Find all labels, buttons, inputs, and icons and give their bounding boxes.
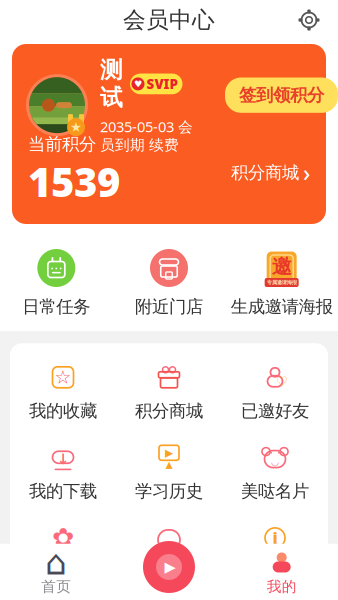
staticText: 测试 xyxy=(100,56,123,112)
button[interactable]: 附近门店 xyxy=(113,248,225,317)
button[interactable]: 日常任务 xyxy=(0,248,113,317)
button[interactable]: ▶ xyxy=(116,444,222,502)
staticText: › xyxy=(303,158,310,188)
button[interactable]: 积分商城 xyxy=(231,152,310,194)
staticText: 邀 xyxy=(272,254,292,279)
staticText: 美哒名片 xyxy=(241,481,309,502)
staticText: ♡ xyxy=(276,374,288,389)
staticText: ⌂ xyxy=(45,543,67,582)
button[interactable]: ⌂ xyxy=(0,544,113,600)
staticText: 积分商城 xyxy=(231,162,299,183)
button[interactable]: ↓ xyxy=(10,444,116,502)
staticText: ◡ xyxy=(271,457,278,467)
button[interactable]: Play xyxy=(113,544,225,600)
staticText: 首页 xyxy=(41,577,71,595)
staticText: 学习历史 xyxy=(135,481,203,502)
staticText: 签到领积分 xyxy=(239,84,324,106)
staticText: ▶ xyxy=(165,447,173,459)
staticText: 已邀好友 xyxy=(241,400,309,422)
staticText: ★ xyxy=(70,120,82,135)
button[interactable]: i xyxy=(222,524,328,584)
staticText: 会员中心 xyxy=(123,6,215,34)
button[interactable]: Settings xyxy=(292,3,326,37)
staticText: ♥ xyxy=(134,79,142,89)
staticText: ☆ xyxy=(54,367,71,388)
staticText: 我的下载 xyxy=(29,481,97,502)
staticText: 我的 xyxy=(267,577,297,595)
button[interactable]: Play xyxy=(141,539,197,595)
staticText: ✿ xyxy=(52,523,74,553)
button[interactable]: ♡ xyxy=(222,363,328,422)
staticText: 1539 xyxy=(28,155,120,208)
staticText: 附近门店 xyxy=(135,296,203,317)
staticText: ↓ xyxy=(57,451,69,468)
staticText xyxy=(167,577,171,596)
button[interactable]: ☆ xyxy=(10,363,116,422)
button[interactable]: 积分商城 xyxy=(116,363,222,422)
button[interactable]: 签到领积分 xyxy=(225,77,338,113)
button[interactable]: ◡ xyxy=(222,444,328,502)
staticText: ▶ xyxy=(164,559,175,575)
staticText: 当前积分 xyxy=(28,133,96,155)
button[interactable]: ✿ xyxy=(10,524,116,584)
staticText: 生成邀请海报 xyxy=(231,296,333,317)
staticText: i xyxy=(272,527,277,548)
staticText: 我的收藏 xyxy=(29,400,97,422)
staticText: SVIP xyxy=(146,75,177,93)
staticText: 日常任务 xyxy=(22,296,90,317)
staticText: 专属邀请海报 xyxy=(267,279,297,286)
staticText: 积分商城 xyxy=(135,400,203,422)
staticText: 2035-05-03 会员到期 续费 xyxy=(100,117,193,154)
button[interactable]: 邀 xyxy=(225,248,338,317)
button[interactable]: 我的 xyxy=(225,544,338,600)
button[interactable] xyxy=(116,524,222,584)
staticText: ▲ xyxy=(165,459,172,470)
